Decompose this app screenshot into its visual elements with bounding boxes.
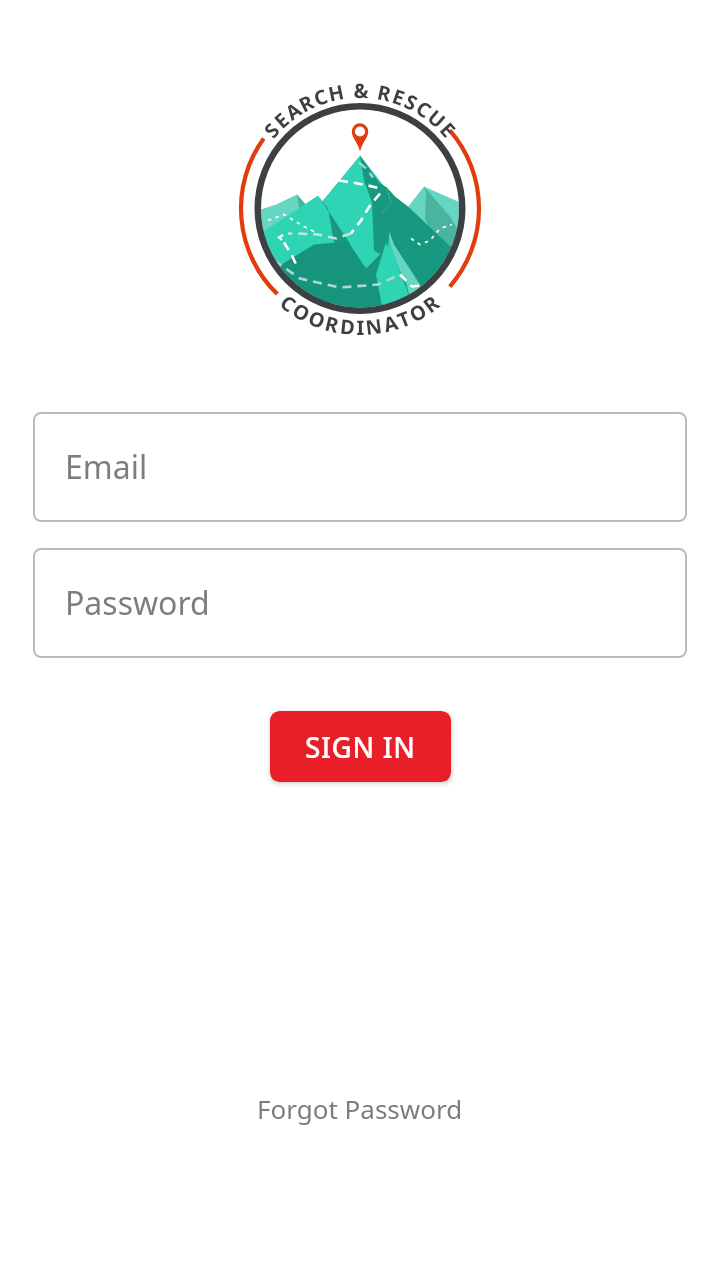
staticText: Email bbox=[65, 445, 148, 489]
staticText: SIGN IN bbox=[305, 728, 416, 766]
staticText: Forgot Password bbox=[257, 1091, 463, 1126]
staticText: Password bbox=[65, 581, 210, 625]
other: Search & Rescue Coordinator logo bbox=[220, 75, 500, 343]
button[interactable]: Email bbox=[33, 412, 687, 522]
button[interactable]: Forgot Password bbox=[241, 1081, 479, 1136]
button[interactable]: SIGN IN bbox=[270, 711, 451, 782]
button[interactable]: Password bbox=[33, 548, 687, 658]
